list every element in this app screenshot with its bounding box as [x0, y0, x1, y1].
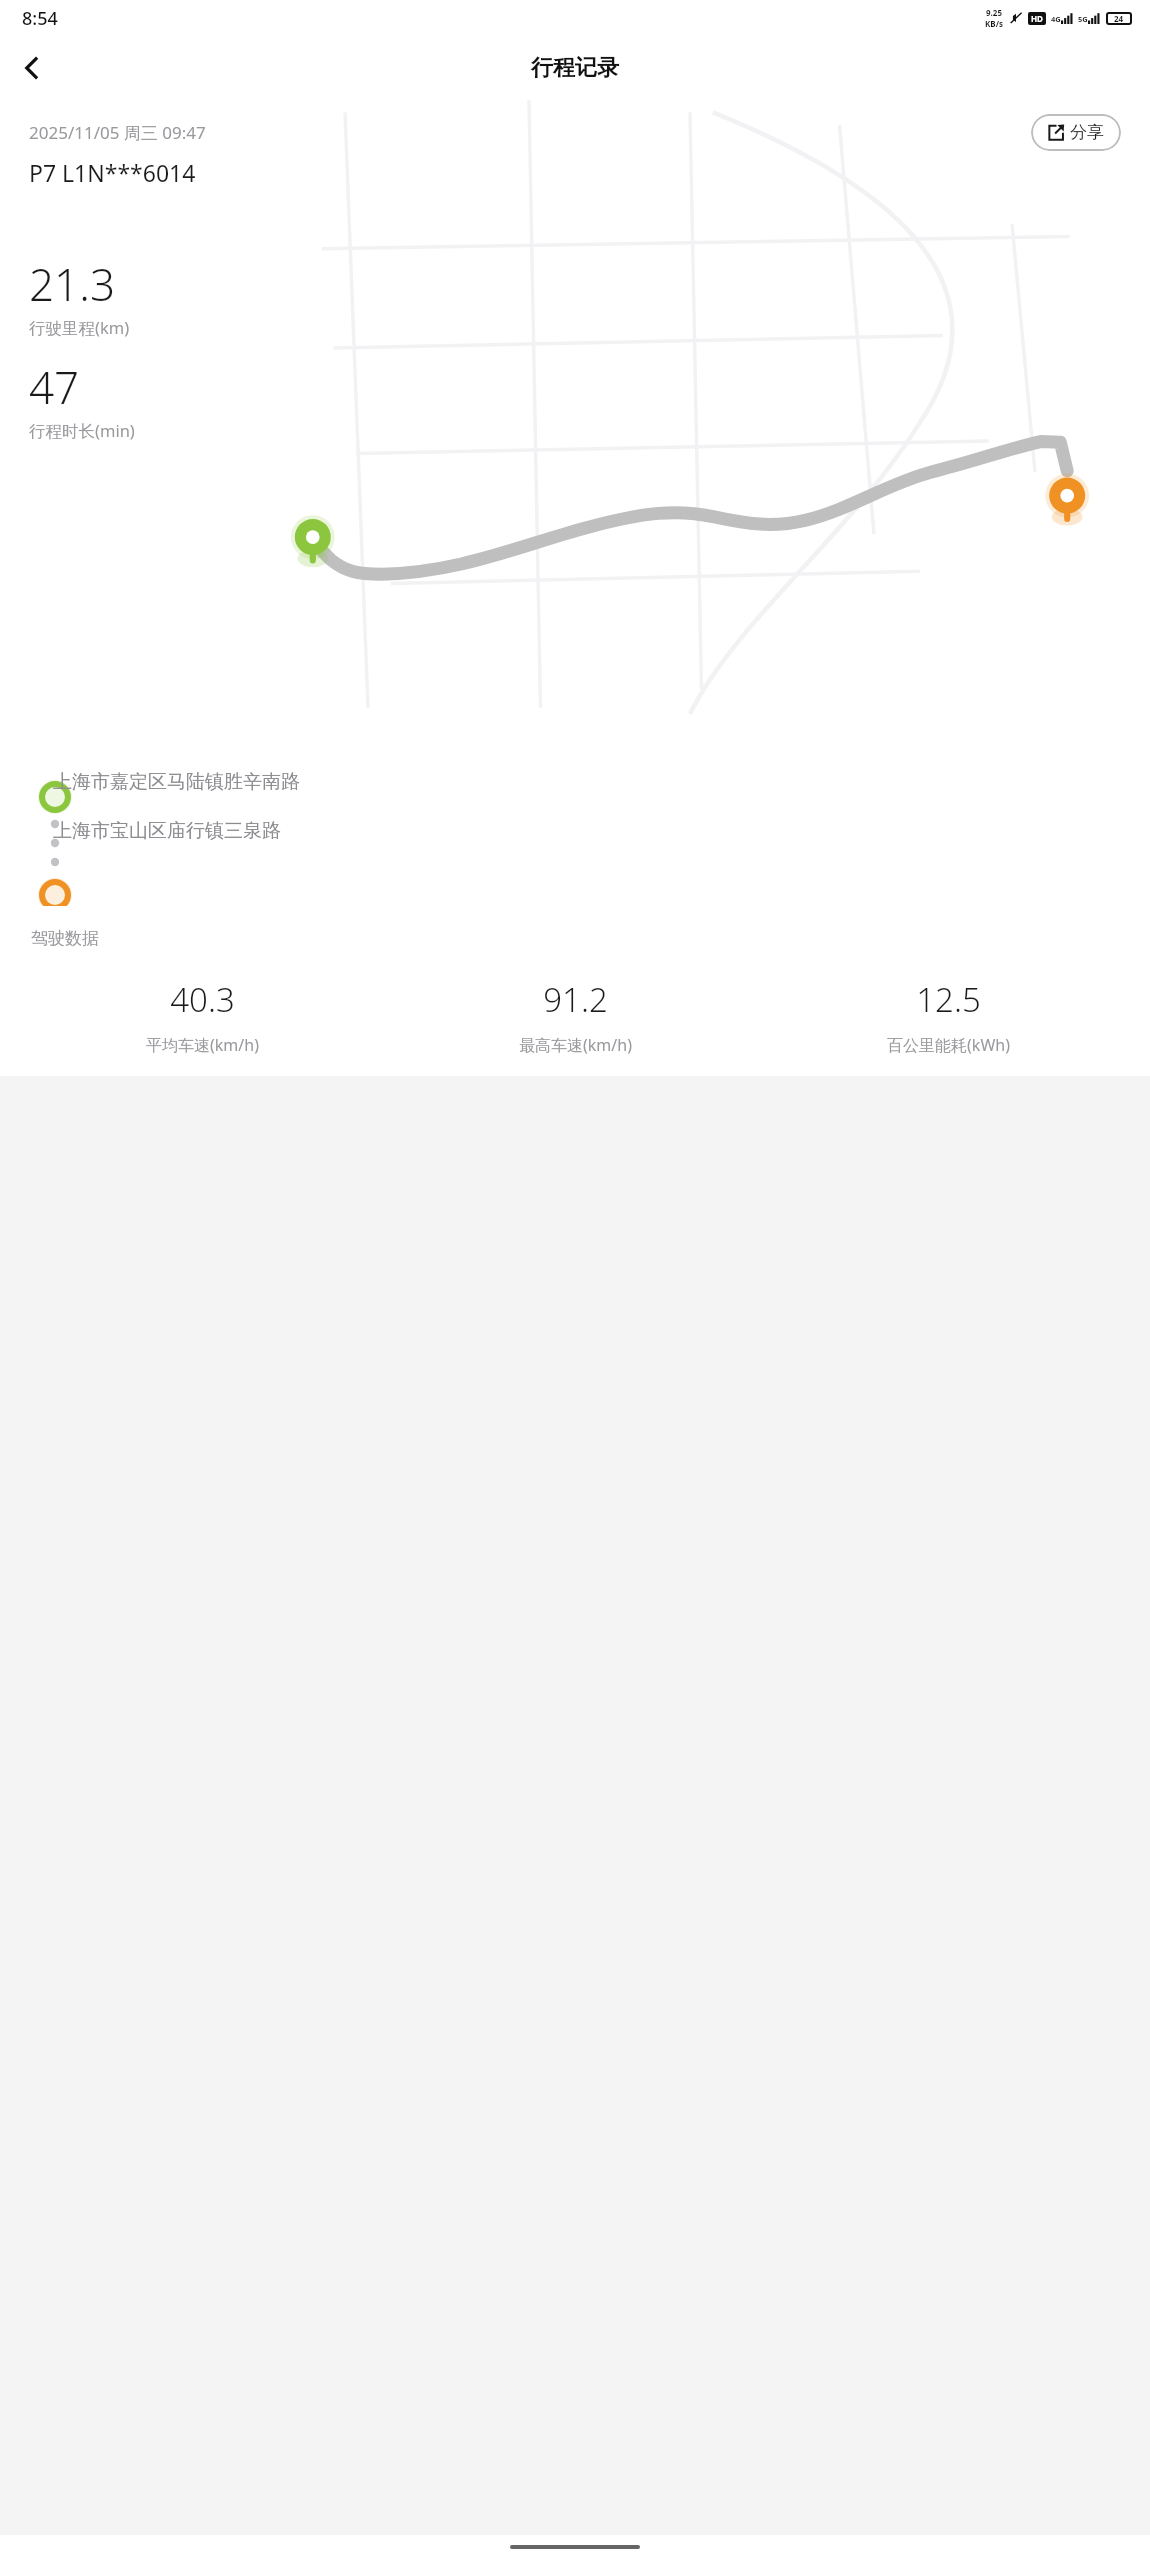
button[interactable]: Back [8, 44, 56, 92]
button[interactable]: 91.2 [389, 977, 762, 1056]
staticText: P7 L1N***6014 [29, 157, 196, 188]
staticText: 9.25 [986, 7, 1002, 18]
staticText: 百公里能耗(kWh) [887, 1034, 1010, 1056]
staticText: 12.5 [916, 977, 981, 1022]
staticText: 8:54 [22, 6, 58, 31]
button[interactable]: 12.5 [762, 977, 1135, 1056]
button[interactable]: 驾驶数据 [15, 906, 1135, 1076]
staticText: 最高车速(km/h) [519, 1034, 632, 1056]
button[interactable]: 分享 [1031, 114, 1121, 151]
staticText: 上海市宝山区庙行镇三泉路 [53, 819, 281, 843]
staticText: 驾驶数据 [31, 928, 99, 949]
button[interactable]: 上海市宝山区庙行镇三泉路 [0, 813, 1150, 849]
staticText: 47 [29, 357, 80, 417]
staticText: KB/s [985, 18, 1003, 29]
staticText: 分享 [1070, 122, 1104, 143]
staticText: 平均车速(km/h) [146, 1034, 259, 1056]
button[interactable]: 上海市嘉定区马陆镇胜辛南路 [0, 764, 1150, 800]
staticText: 4G [1051, 14, 1061, 24]
button[interactable]: 40.3 [15, 977, 389, 1056]
staticText: 40.3 [170, 977, 235, 1022]
staticText: 5G [1078, 14, 1088, 24]
staticText: 上海市嘉定区马陆镇胜辛南路 [53, 770, 300, 794]
staticText: 行驶里程(km) [29, 316, 130, 339]
staticText: 2025/11/05 周三 09:47 [29, 121, 206, 144]
staticText: 24 [1114, 13, 1124, 24]
staticText: HD [1031, 13, 1043, 24]
staticText: 91.2 [543, 977, 608, 1022]
staticText: 21.3 [29, 254, 116, 314]
staticText: 行程记录 [531, 54, 619, 82]
staticText: 行程时长(min) [29, 419, 135, 442]
